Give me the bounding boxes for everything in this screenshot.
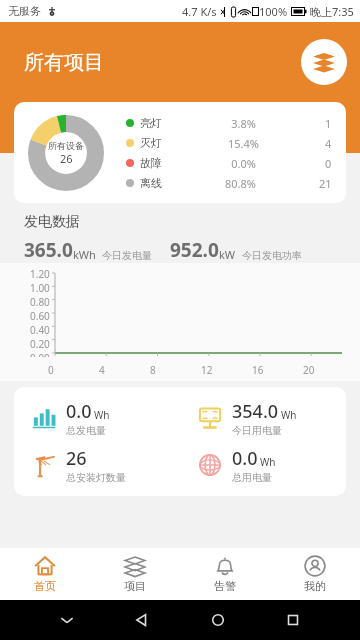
staticText: 总发电量 <box>66 424 106 437</box>
button[interactable]: 0.0 <box>14 395 180 441</box>
button[interactable]: 26 <box>14 441 180 488</box>
button[interactable]: 我的 <box>270 548 360 600</box>
staticText: 952.0 <box>170 237 219 263</box>
staticText: 我的 <box>304 579 326 593</box>
staticText: 0 <box>48 363 54 377</box>
staticText: Wh <box>260 455 276 469</box>
staticText: 0.0 <box>66 399 92 424</box>
staticText: 发电数据 <box>24 213 80 231</box>
staticText: 26 <box>66 446 87 471</box>
staticText: 354.0 <box>232 399 279 424</box>
button[interactable]: 项目列表 <box>301 39 347 85</box>
staticText: 4.7 K/s <box>182 4 217 19</box>
staticText: 365.0 <box>24 237 73 263</box>
staticText: 所有项目 <box>24 50 104 75</box>
staticText: 0.40 <box>30 323 50 337</box>
staticText: 0.00 <box>30 351 50 357</box>
staticText: 1.00 <box>30 281 50 295</box>
staticText: 16 <box>252 363 264 377</box>
staticText: 3.8% <box>162 116 325 131</box>
staticText: 0 <box>325 156 332 171</box>
staticText: 100% <box>259 4 288 19</box>
staticText: 晚上7:35 <box>310 4 354 19</box>
staticText: 所有设备 <box>48 140 84 151</box>
staticText: 8 <box>150 363 156 377</box>
button[interactable]: 所有设备 <box>14 102 346 203</box>
staticText: 今日用电量 <box>232 424 282 437</box>
staticText: kWh <box>73 247 96 262</box>
staticText: 项目 <box>124 579 146 593</box>
other: Hide keyboard <box>59 612 75 628</box>
staticText: 今日发电量 <box>102 249 152 262</box>
staticText: 首页 <box>34 579 56 593</box>
staticText: 0.0 <box>232 446 258 471</box>
button[interactable]: 354.0 <box>180 395 346 441</box>
staticText: 告警 <box>214 579 236 593</box>
staticText: Wh <box>94 408 110 422</box>
staticText: 今日发电功率 <box>242 249 302 262</box>
staticText: 0.20 <box>30 337 50 351</box>
staticText: 4 <box>325 136 332 151</box>
button[interactable]: 告警 <box>180 548 270 600</box>
staticText: 灭灯 <box>140 136 162 150</box>
staticText: 80.8% <box>162 176 319 191</box>
staticText: 总用电量 <box>232 471 272 484</box>
staticText: 离线 <box>140 176 162 190</box>
staticText: 20 <box>303 363 315 377</box>
staticText: 亮灯 <box>140 116 162 130</box>
staticText: 15.4% <box>162 136 325 151</box>
staticText: 0.60 <box>30 309 50 323</box>
staticText: 12 <box>201 363 213 377</box>
button[interactable]: 0.0 <box>180 441 346 488</box>
staticText: 0.0% <box>162 156 325 171</box>
staticText: 1.20 <box>30 267 50 281</box>
staticText: 21 <box>319 176 332 191</box>
staticText: 26 <box>60 151 73 166</box>
other: Back <box>134 612 150 628</box>
staticText: 总安装灯数量 <box>66 471 126 484</box>
button[interactable]: 项目 <box>90 548 180 600</box>
other: Recents <box>285 612 301 628</box>
staticText: 故障 <box>140 156 162 170</box>
staticText: 4 <box>99 363 105 377</box>
button[interactable]: 首页 <box>0 548 90 600</box>
staticText: 0.80 <box>30 295 50 309</box>
other: Home <box>210 612 226 628</box>
staticText: kW <box>219 247 236 262</box>
staticText: 无服务 <box>8 4 41 18</box>
staticText: 1 <box>325 116 332 131</box>
staticText: Wh <box>281 408 297 422</box>
